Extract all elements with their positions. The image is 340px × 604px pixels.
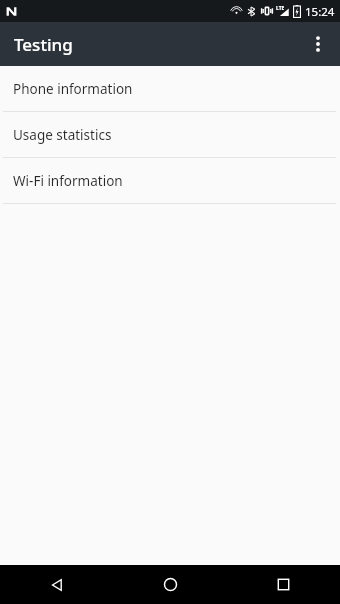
button[interactable]: Usage statistics xyxy=(0,112,340,157)
staticText: Phone information xyxy=(13,80,133,98)
button[interactable]: Phone information xyxy=(0,66,340,111)
staticText: 15:24 xyxy=(305,4,335,18)
button[interactable]: Home xyxy=(114,565,227,604)
button[interactable]: More options xyxy=(296,22,340,66)
staticText: Wi-Fi information xyxy=(13,172,123,190)
staticText: Testing xyxy=(14,33,73,56)
button[interactable]: Recent apps xyxy=(227,565,340,604)
staticText: Usage statistics xyxy=(13,126,112,144)
button[interactable]: Back xyxy=(0,565,114,604)
staticText: LTE xyxy=(276,5,285,12)
button[interactable]: Wi-Fi information xyxy=(0,158,340,203)
